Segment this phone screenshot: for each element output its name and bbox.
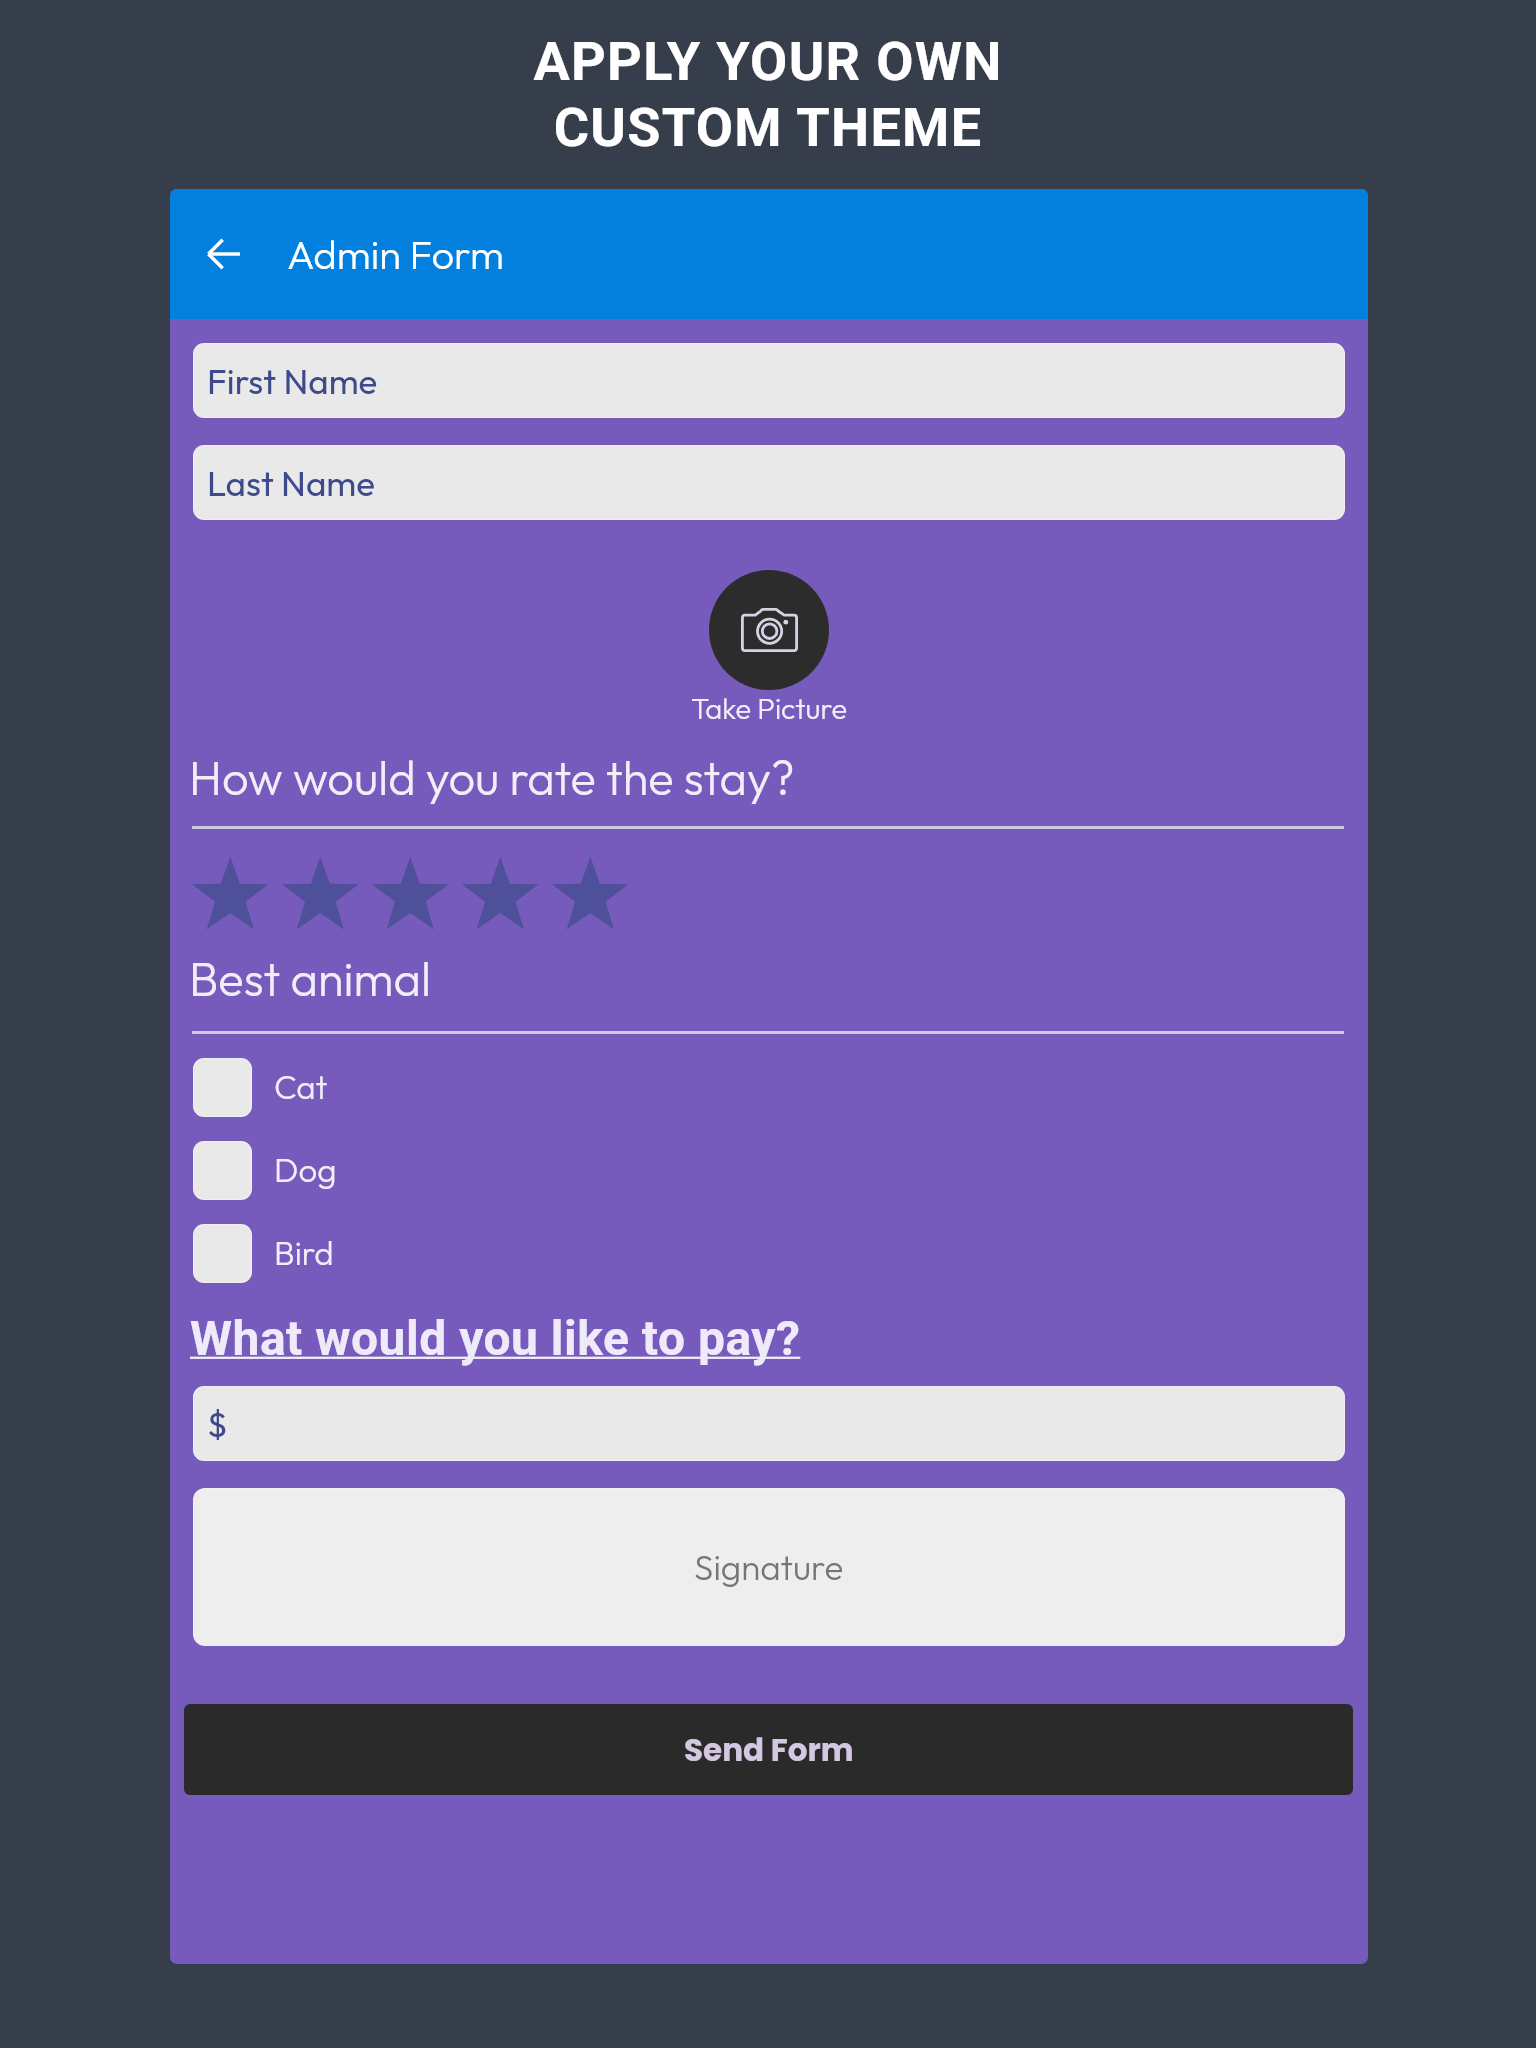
button[interactable]: Send Form — [184, 1704, 1353, 1795]
button[interactable]: Back — [189, 219, 259, 289]
staticText: Signature — [694, 1545, 844, 1589]
button[interactable]: Dog — [193, 1139, 613, 1201]
staticText: First Name — [207, 359, 378, 403]
button[interactable]: Last Name — [193, 445, 1345, 520]
button[interactable]: Take Picture — [709, 570, 829, 690]
button[interactable]: Signature — [193, 1488, 1345, 1646]
staticText: Take Picture — [691, 690, 848, 727]
staticText: Last Name — [207, 461, 376, 505]
staticText: $ — [207, 1402, 228, 1446]
button[interactable]: Cat — [193, 1056, 613, 1118]
button[interactable]: Bird — [193, 1222, 613, 1284]
staticText: Bird — [274, 1232, 334, 1274]
staticText: Best animal — [189, 949, 431, 1008]
staticText: Send Form — [684, 1728, 854, 1771]
staticText: Cat — [274, 1066, 328, 1108]
button[interactable]: $ — [193, 1386, 1345, 1461]
button[interactable]: First Name — [193, 343, 1345, 418]
staticText: Admin Form — [287, 229, 505, 279]
button[interactable]: Rate five stars — [190, 857, 640, 929]
staticText: Dog — [274, 1149, 337, 1191]
staticText: How would you rate the stay? — [189, 748, 795, 807]
staticText: What would you like to pay? — [190, 1310, 801, 1366]
staticText: APPLY YOUR OWN CUSTOM THEME — [533, 30, 1003, 159]
